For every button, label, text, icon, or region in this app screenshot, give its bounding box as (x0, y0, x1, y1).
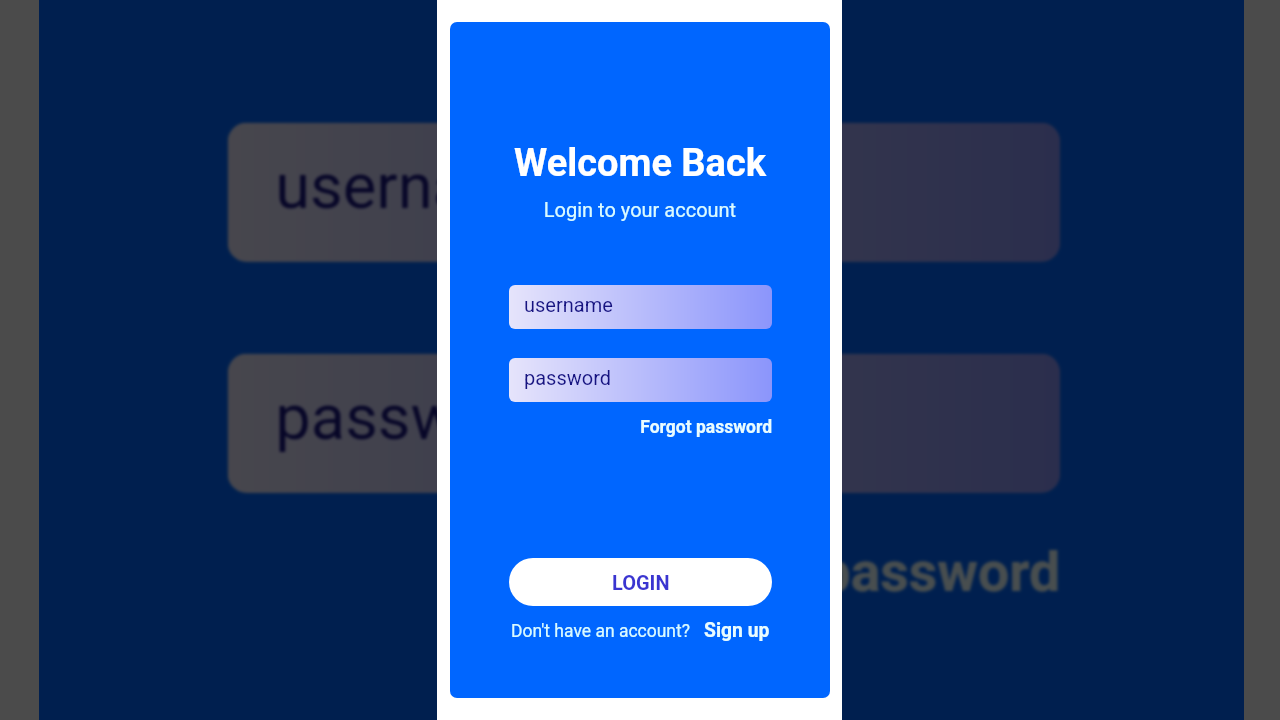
staticText: Welcome Back (450, 141, 830, 186)
button[interactable]: Forgot password (509, 417, 772, 438)
staticText: password (524, 366, 612, 389)
staticText: username (524, 293, 613, 316)
staticText: Login to your account (450, 198, 830, 221)
button[interactable]: password text field (509, 358, 772, 402)
staticText: LOGIN (612, 571, 670, 594)
staticText: username (275, 148, 557, 221)
button[interactable]: username text field (509, 285, 772, 329)
staticText: password (275, 379, 554, 452)
staticText: Don't have an account? (511, 621, 691, 642)
staticText: Forgot password (228, 540, 1060, 607)
button[interactable]: LOGIN (509, 558, 772, 606)
button[interactable]: Sign up (704, 619, 770, 642)
